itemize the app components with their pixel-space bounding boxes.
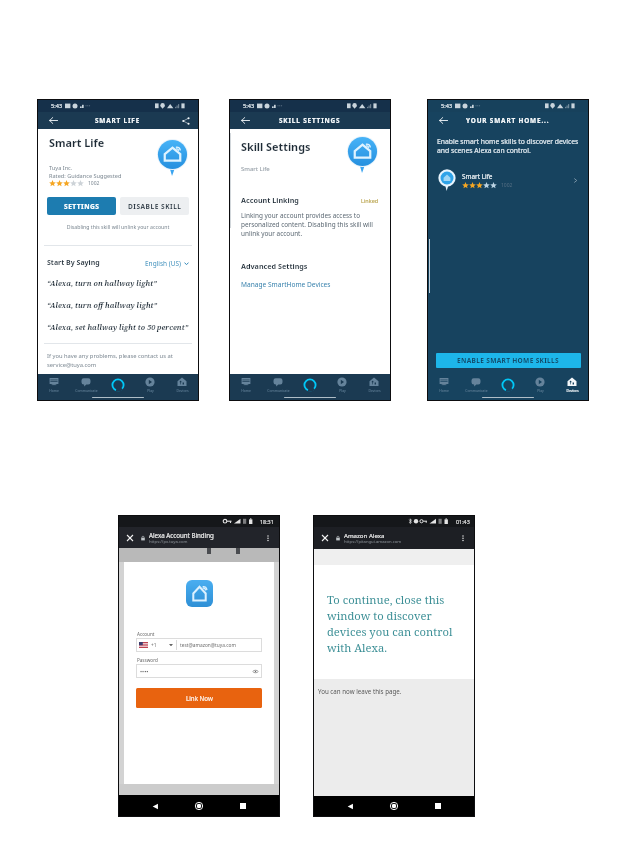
staticText: test@amazon@tuya.com (180, 642, 236, 649)
staticText: Devices (176, 388, 189, 393)
staticText: Password (137, 657, 158, 663)
staticText: If you have any problems, please contact… (47, 352, 173, 360)
staticText: You can now leave this page. (318, 687, 402, 695)
staticText: Play (339, 388, 346, 393)
staticText: YOUR SMART HOME... (466, 116, 550, 125)
staticText: +1 (151, 642, 157, 649)
button[interactable]: Devices (358, 376, 390, 394)
staticText: service@tuya.com (47, 361, 97, 369)
staticText: Home (49, 388, 59, 393)
button[interactable]: Communicate (460, 376, 492, 394)
staticText: •••• (140, 668, 149, 675)
button[interactable]: test@amazon@tuya.com (177, 638, 262, 652)
staticText: Disabling this skill will unlink your ac… (38, 223, 198, 230)
button[interactable]: Play (134, 376, 166, 394)
staticText: Devices (368, 388, 381, 393)
button[interactable]: Back (147, 798, 163, 814)
button[interactable]: English (US) (145, 259, 189, 268)
button[interactable]: Recents (235, 798, 251, 814)
button[interactable]: Manage SmartHome Devices (241, 280, 331, 289)
staticText: Communicate (465, 388, 488, 393)
staticText: “Alexa, set hallway light to 50 percent” (47, 322, 189, 332)
staticText: SETTINGS (64, 202, 100, 211)
button[interactable]: •••• (136, 664, 262, 678)
staticText: Alexa Account Binding (149, 531, 214, 539)
staticText: https://px.tuya.com (149, 539, 188, 545)
staticText: 5:43 (243, 102, 255, 110)
staticText: Rated: Guidance Suggested (49, 172, 122, 180)
staticText: Home (439, 388, 449, 393)
button[interactable]: Close (123, 531, 137, 545)
staticText: Communicate (267, 388, 290, 393)
staticText: https://pitangui.amazon.com (344, 539, 402, 545)
staticText: Smart Life (49, 135, 105, 150)
button[interactable]: Home (38, 376, 70, 394)
button[interactable]: More options (456, 531, 470, 545)
staticText: 1002 (501, 182, 513, 189)
staticText: DISABLE SKILL (128, 202, 182, 211)
button[interactable]: +1 (136, 638, 176, 652)
staticText: English (US) (145, 259, 182, 268)
button[interactable]: SETTINGS (47, 197, 116, 215)
button[interactable]: Alexa (102, 377, 134, 393)
staticText: Tuya Inc. (49, 164, 73, 172)
staticText: Home (241, 388, 251, 393)
button[interactable]: Home (191, 798, 207, 814)
staticText: 01:43 (456, 518, 470, 525)
button[interactable]: Communicate (70, 376, 102, 394)
staticText: Smart Life (241, 165, 270, 173)
button[interactable]: Back (237, 112, 254, 129)
button[interactable]: Smart Life (428, 167, 588, 193)
staticText: Smart Life (462, 172, 493, 181)
button[interactable]: Alexa (294, 377, 326, 393)
button[interactable]: Home (230, 376, 262, 394)
staticText: Communicate (75, 388, 98, 393)
staticText: Account Linking (241, 195, 299, 205)
staticText: Amazon Alexa (344, 531, 385, 539)
staticText: Play (537, 388, 544, 393)
button[interactable]: Play (326, 376, 358, 394)
staticText: Enable smart home skills to discover dev… (437, 137, 584, 155)
button[interactable]: More options (261, 531, 275, 545)
button[interactable]: Home (428, 376, 460, 394)
staticText: 5:43 (441, 102, 453, 110)
staticText: Advanced Settings (241, 261, 308, 271)
staticText: SMART LIFE (95, 116, 141, 125)
staticText: Account (137, 631, 155, 637)
staticText: Linking your account provides access to … (241, 211, 378, 238)
button[interactable]: Share (177, 112, 194, 129)
staticText: Devices (566, 388, 579, 393)
staticText: 1002 (88, 180, 100, 187)
button[interactable]: Alexa (492, 377, 524, 393)
button[interactable]: Recents (430, 798, 446, 814)
button[interactable]: Communicate (262, 376, 294, 394)
button[interactable]: Close (318, 531, 332, 545)
staticText: SKILL SETTINGS (279, 116, 341, 125)
staticText: ENABLE SMART HOME SKILLS (457, 356, 560, 365)
button[interactable]: Devices (166, 376, 198, 394)
button[interactable]: Home (386, 798, 402, 814)
staticText: Skill Settings (241, 139, 311, 154)
staticText: 18:31 (260, 518, 274, 525)
staticText: Play (147, 388, 154, 393)
staticText: Link Now (186, 694, 213, 702)
button[interactable]: Back (435, 112, 452, 129)
button[interactable]: Link Now (136, 688, 262, 708)
button[interactable]: DISABLE SKILL (120, 197, 189, 215)
staticText: “Alexa, turn on hallway light” (47, 278, 157, 288)
button[interactable]: Back (342, 798, 358, 814)
staticText: 5:43 (51, 102, 63, 110)
staticText: To continue, close this window to discov… (327, 592, 463, 655)
button[interactable]: Devices (556, 376, 588, 394)
staticText: “Alexa, turn off hallway light” (47, 300, 158, 310)
button[interactable]: Back (45, 112, 62, 129)
staticText: Start By Saying (47, 258, 100, 268)
button[interactable]: Play (524, 376, 556, 394)
staticText: Linked (361, 197, 379, 204)
button[interactable]: ENABLE SMART HOME SKILLS (436, 353, 581, 368)
